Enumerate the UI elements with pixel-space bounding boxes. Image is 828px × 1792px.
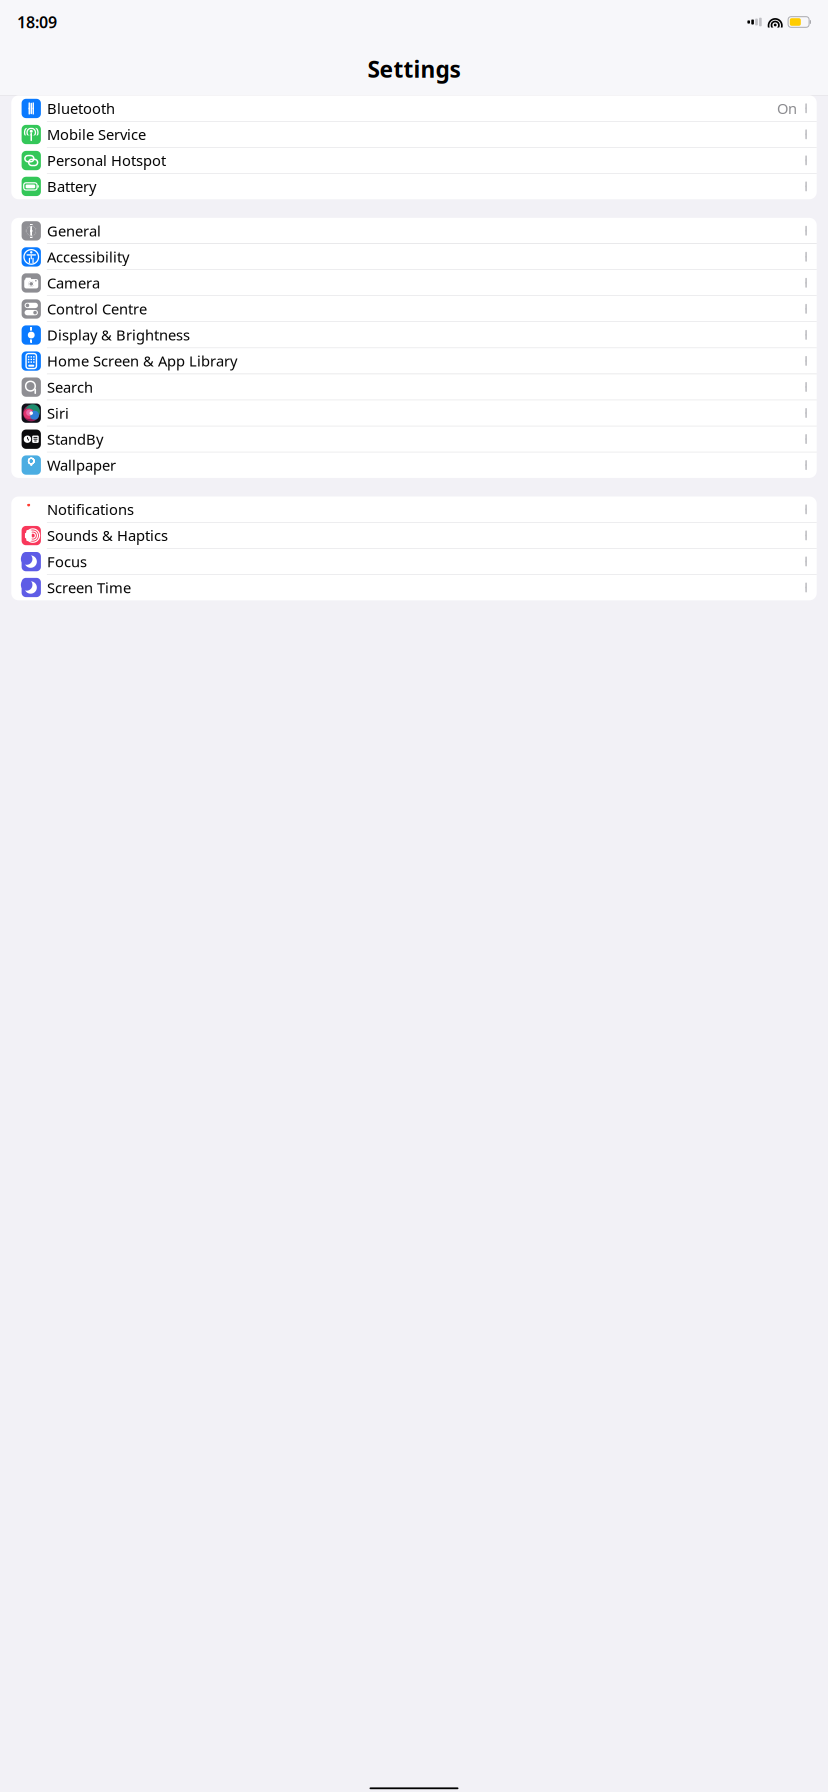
button[interactable]: Battery: [11, 174, 817, 199]
button[interactable]: General: [11, 218, 817, 244]
staticText: Mobile Service: [47, 125, 146, 144]
staticText: Personal Hotspot: [47, 151, 166, 170]
staticText: Wallpaper: [47, 455, 116, 475]
staticText: General: [47, 221, 101, 240]
button[interactable]: Siri: [11, 400, 817, 426]
staticText: Home Screen & App Library: [47, 351, 237, 371]
staticText: Focus: [47, 552, 87, 571]
staticText: Bluetooth: [47, 99, 115, 118]
staticText: Search: [47, 377, 93, 397]
button[interactable]: Focus: [11, 549, 817, 575]
staticText: 18:09: [17, 11, 57, 33]
staticText: Notifications: [47, 500, 134, 519]
button[interactable]: StandBy: [11, 426, 817, 452]
staticText: Control Centre: [47, 299, 147, 319]
button[interactable]: Notifications: [11, 496, 817, 522]
button[interactable]: Accessibility: [11, 244, 817, 270]
staticText: StandBy: [47, 429, 103, 449]
staticText: On: [777, 99, 797, 118]
button[interactable]: Display & Brightness: [11, 322, 817, 348]
button[interactable]: Search: [11, 374, 817, 400]
button[interactable]: Home Screen & App Library: [11, 348, 817, 374]
staticText: Settings: [367, 54, 460, 84]
staticText: Screen Time: [47, 578, 131, 597]
button[interactable]: Personal Hotspot: [11, 147, 817, 173]
staticText: Sounds & Haptics: [47, 526, 168, 545]
button[interactable]: Screen Time: [11, 575, 817, 600]
button[interactable]: Bluetooth: [11, 95, 817, 121]
button[interactable]: Camera: [11, 270, 817, 296]
button[interactable]: Sounds & Haptics: [11, 523, 817, 549]
staticText: Camera: [47, 273, 100, 293]
button[interactable]: Mobile Service: [11, 121, 817, 147]
button[interactable]: Wallpaper: [11, 452, 817, 478]
staticText: Display & Brightness: [47, 325, 190, 345]
staticText: Battery: [47, 177, 96, 196]
staticText: Siri: [47, 403, 69, 423]
button[interactable]: Control Centre: [11, 296, 817, 322]
staticText: Accessibility: [47, 247, 129, 266]
